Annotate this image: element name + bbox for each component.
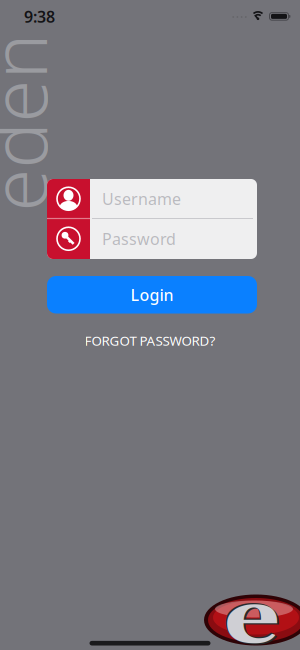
staticText: eden bbox=[0, 71, 106, 174]
button[interactable]: Password bbox=[47, 218, 257, 259]
staticText: Login bbox=[130, 284, 173, 305]
staticText: e bbox=[230, 570, 274, 650]
staticText: 9:38 bbox=[24, 6, 55, 27]
staticText: FORGOT PASSWORD? bbox=[84, 332, 215, 349]
button[interactable]: FORGOT PASSWORD? bbox=[76, 328, 223, 353]
staticText: e bbox=[231, 572, 275, 650]
button[interactable]: Login bbox=[47, 276, 257, 313]
staticText: Password bbox=[102, 228, 176, 249]
staticText: Username bbox=[102, 188, 181, 209]
button[interactable]: Username bbox=[47, 179, 257, 218]
staticText: e bbox=[229, 569, 273, 650]
